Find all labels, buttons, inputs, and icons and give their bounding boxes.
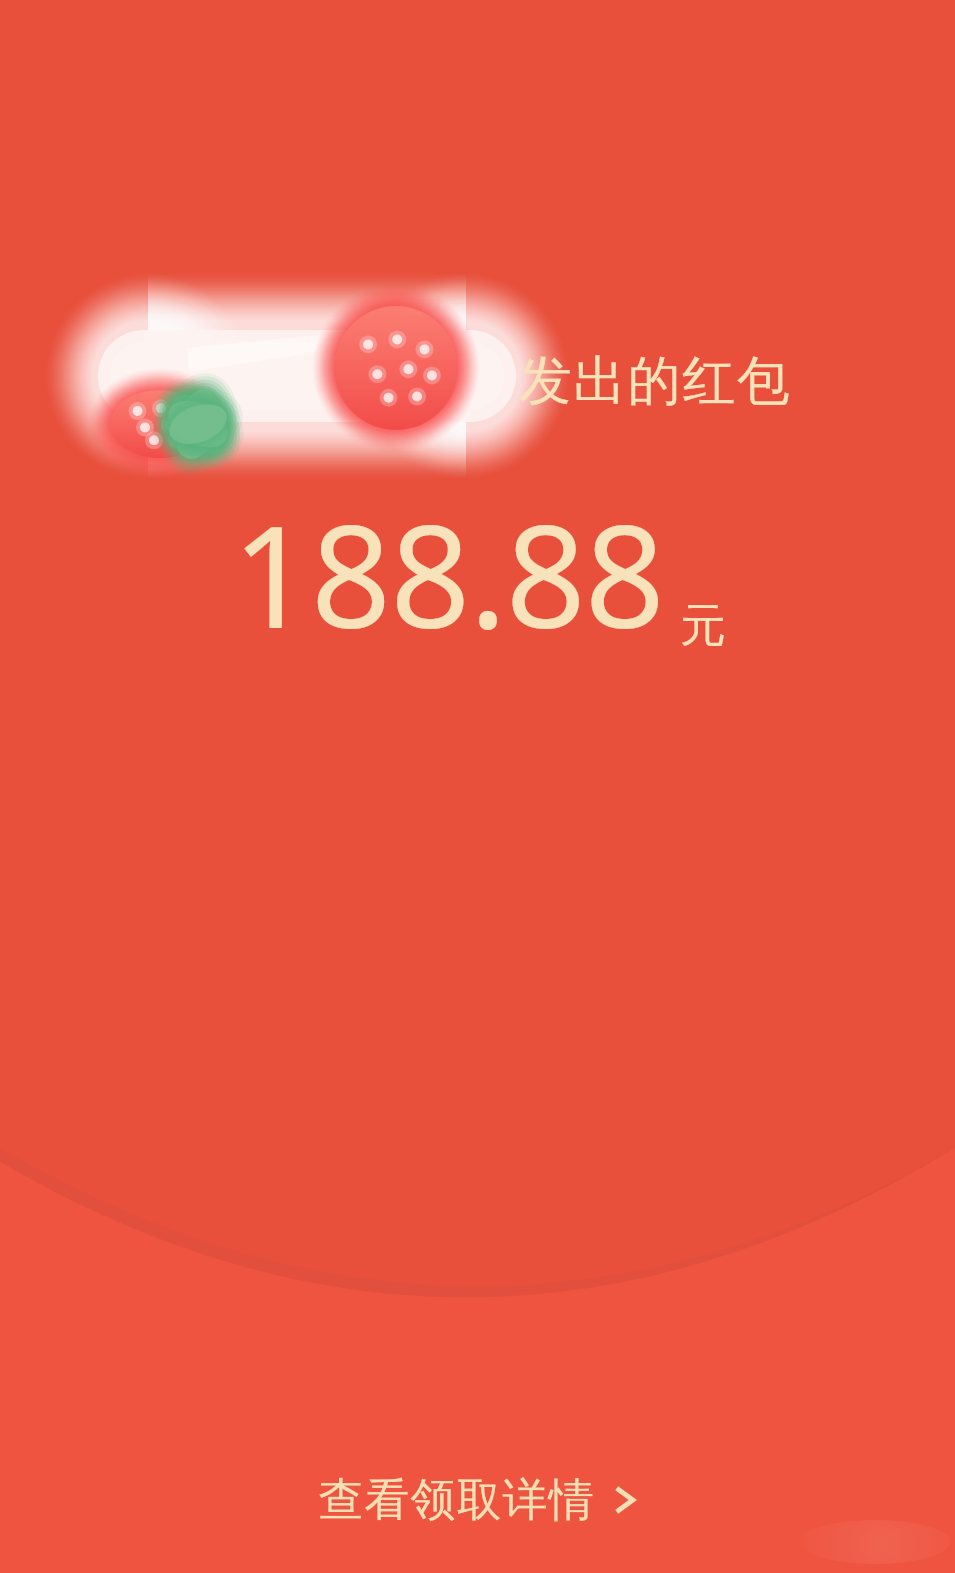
staticText: 发出的红包 — [519, 348, 792, 415]
button[interactable]: 查看领取详情 — [278, 1462, 678, 1538]
staticText: 188.88 — [232, 478, 664, 669]
staticText: 查看领取详情 — [318, 1472, 594, 1529]
staticText: 元 — [680, 597, 726, 655]
